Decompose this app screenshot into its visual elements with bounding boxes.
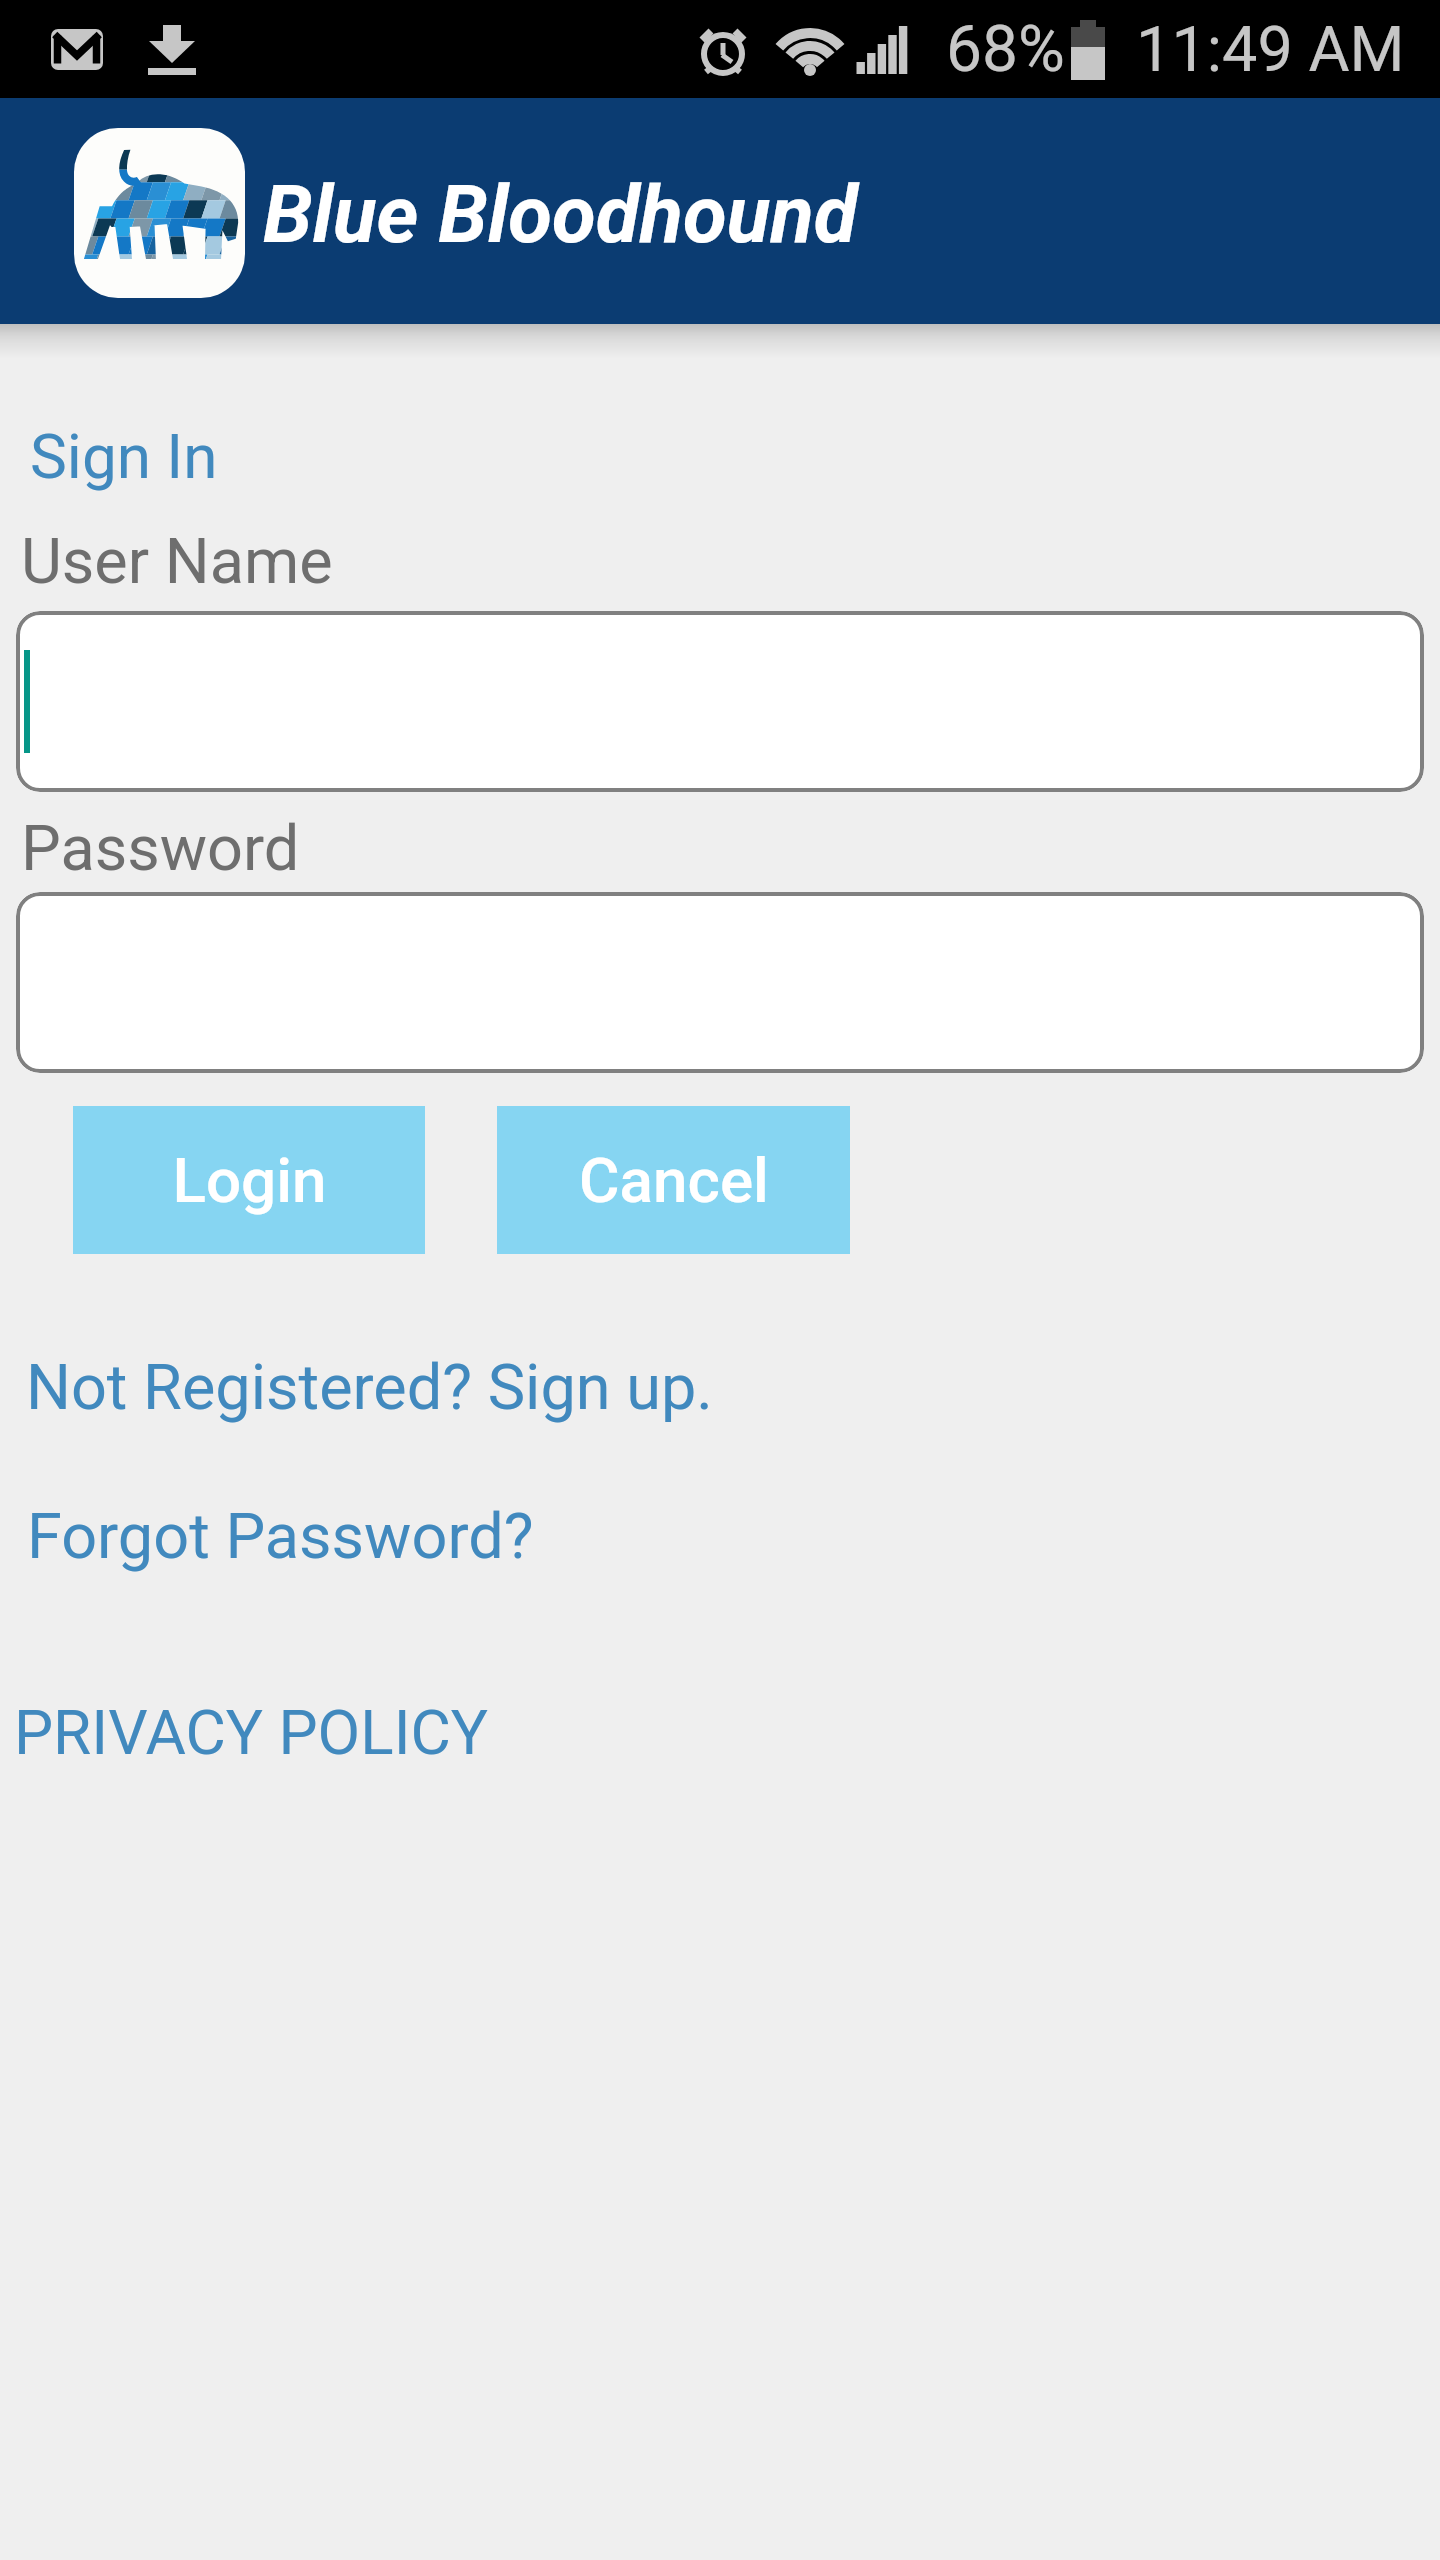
button[interactable] — [16, 611, 1424, 792]
staticText: Not Registered? Sign up. — [26, 1351, 713, 1425]
button[interactable]: Cancel — [497, 1106, 850, 1254]
button[interactable]: Forgot Password? — [27, 1500, 534, 1574]
other: Battery — [1071, 20, 1105, 80]
staticText: Sign In — [30, 420, 218, 493]
staticText: Login — [172, 1144, 327, 1217]
staticText: Password — [21, 812, 300, 886]
button[interactable]: Blue Bloodhound app icon — [74, 128, 245, 298]
staticText: 68% — [946, 12, 1065, 87]
button[interactable] — [16, 892, 1424, 1073]
button[interactable]: Not Registered? Sign up. — [26, 1351, 713, 1425]
staticText: Forgot Password? — [27, 1500, 534, 1574]
button[interactable]: PRIVACY POLICY — [14, 1696, 489, 1769]
other: Wi-Fi — [778, 21, 842, 79]
staticText: PRIVACY POLICY — [14, 1696, 489, 1769]
staticText: Cancel — [579, 1144, 769, 1217]
staticText: 11:49 AM — [1136, 13, 1405, 87]
staticText: User Name — [21, 525, 333, 599]
staticText: Blue Bloodhound — [263, 168, 858, 262]
other: Alarm set — [700, 21, 746, 79]
button[interactable]: Login — [73, 1106, 425, 1254]
other: Mobile signal — [855, 21, 909, 79]
